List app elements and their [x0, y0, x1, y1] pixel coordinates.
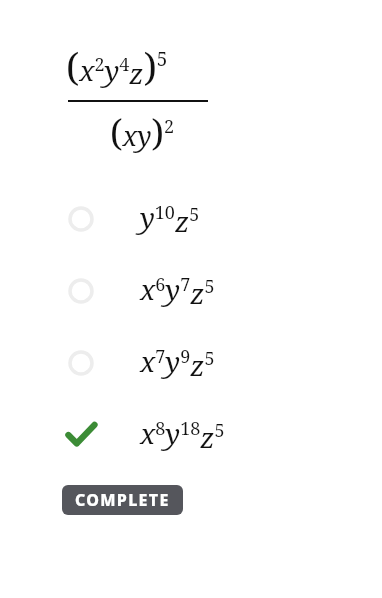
other: Select answer	[66, 348, 96, 378]
staticText: x7y9z5	[140, 342, 215, 384]
other: Select answer	[66, 276, 96, 306]
button[interactable]: Selected correct answer	[0, 399, 382, 471]
other: Selected correct answer	[66, 420, 96, 450]
button[interactable]: Select answer	[0, 327, 382, 399]
staticText: y10z5	[140, 198, 200, 240]
staticText: x6y7z5	[140, 270, 215, 312]
staticText: x8y18z5	[140, 414, 225, 456]
button[interactable]: Select answer	[0, 255, 382, 327]
button[interactable]: Select answer	[0, 183, 382, 255]
other: Select answer	[66, 204, 96, 234]
staticText: (x2y4z)5	[66, 40, 168, 92]
staticText: (xy)2	[110, 108, 174, 157]
staticText: COMPLETE	[75, 489, 170, 511]
button[interactable]: COMPLETE	[62, 485, 183, 515]
